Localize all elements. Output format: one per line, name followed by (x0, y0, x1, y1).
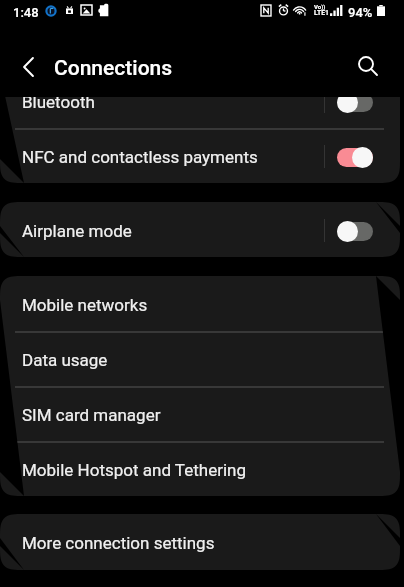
button[interactable]: Back (4, 43, 52, 91)
staticText: NFC and contactless payments (22, 147, 258, 167)
staticText: 94% (348, 5, 373, 20)
staticText: SIM card manager (22, 405, 161, 425)
staticText: Vo)) (314, 3, 326, 10)
button[interactable]: SIM card manager (0, 386, 400, 441)
staticText: Connections (54, 56, 173, 81)
button[interactable]: On (337, 146, 373, 168)
button[interactable]: Bluetooth (0, 73, 400, 128)
staticText: 1:48 (13, 5, 39, 20)
staticText: Bluetooth (22, 92, 95, 112)
staticText: Mobile networks (22, 295, 148, 315)
staticText: Airplane mode (22, 221, 132, 241)
staticText: Mobile Hotspot and Tethering (22, 460, 246, 480)
button[interactable]: Search (345, 42, 391, 88)
staticText: LTE1 (314, 9, 329, 17)
button[interactable]: Data usage (0, 331, 400, 386)
staticText: More connection settings (22, 533, 215, 553)
staticText: Data usage (22, 350, 108, 370)
button[interactable]: Airplane mode (0, 202, 400, 257)
button[interactable]: NFC and contactless payments (0, 128, 400, 183)
button[interactable]: Mobile networks (0, 276, 400, 331)
button[interactable]: Off (337, 91, 373, 113)
button[interactable]: Off (337, 220, 373, 242)
button[interactable]: Mobile Hotspot and Tethering (0, 441, 400, 496)
button[interactable]: More connection settings (0, 514, 400, 570)
